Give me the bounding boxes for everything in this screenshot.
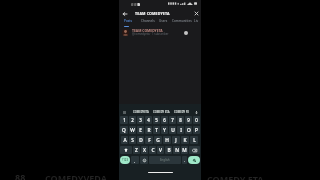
staticText: W [130,127,135,134]
staticText: L [193,137,196,144]
button[interactable]: N [173,146,180,154]
button[interactable]: G [154,136,162,144]
staticText: B [167,147,171,154]
button[interactable]: 9 [185,116,192,124]
staticText: Communities [172,19,192,23]
button[interactable]: TEAM COMEDYETA [119,27,201,38]
button[interactable]: More options [183,30,189,36]
staticText: 9 [187,117,190,123]
button[interactable]: COMEDYETA [130,109,151,115]
staticText: 1 [123,117,126,123]
staticText: K [183,137,187,144]
button[interactable]: Search [188,156,200,164]
staticText: T [155,127,158,134]
button[interactable]: Voice input [191,109,201,115]
staticText: D [139,137,143,144]
staticText: Z [135,147,138,154]
button[interactable]: H [163,136,171,144]
button[interactable]: S [129,136,136,144]
staticText: 88 [15,171,26,180]
staticText: P [195,127,198,134]
button[interactable]: M [181,146,188,154]
staticText: COMEDYETA [133,110,149,114]
button[interactable]: Back [121,10,128,17]
button[interactable]: W [129,126,136,134]
button[interactable]: O [185,126,192,134]
button[interactable]: Channels [141,19,155,23]
button[interactable]: X [141,146,148,154]
button[interactable]: 2 [129,116,136,124]
staticText: Channels [141,19,155,23]
button[interactable]: A [121,136,128,144]
staticText: U [171,127,175,134]
button[interactable]: , [131,156,139,164]
staticText: R [147,127,151,134]
staticText: Liv [194,19,199,23]
button[interactable]: K [181,136,189,144]
staticText: 8 [179,117,182,123]
button[interactable] [140,156,148,164]
button[interactable]: C [149,146,156,154]
button[interactable]: J [172,136,180,144]
staticText: 7 [171,117,174,123]
button[interactable]: 8 [177,116,184,124]
staticText: A [123,137,127,144]
button[interactable]: U [169,126,176,134]
staticText: ?123 [122,158,129,162]
staticText: F [148,137,151,144]
staticText: COMEDY FX [174,110,189,114]
button[interactable]: More options [119,109,130,115]
button[interactable]: COMEDY ETA [151,109,171,115]
staticText: C [151,147,155,154]
button[interactable]: P [193,126,200,134]
button[interactable]: Liv [194,19,199,23]
staticText: Y [163,127,166,134]
staticText: 4 [147,117,150,123]
staticText: COMEDY ETA [207,173,264,180]
button[interactable]: ?123 [120,156,130,164]
button[interactable]: B [165,146,172,154]
staticText: Posts [124,19,132,23]
button[interactable]: E [137,126,144,134]
staticText: . [184,158,186,163]
staticText: O [187,127,191,134]
button[interactable]: 0 [193,116,200,124]
button[interactable]: Clear search [193,10,200,17]
button[interactable]: Shift [120,146,132,154]
staticText: N [175,147,179,154]
staticText: 6 [163,117,166,123]
button[interactable]: Communities [172,19,192,23]
staticText: H [165,137,169,144]
button[interactable]: T [153,126,160,134]
button[interactable]: R [145,126,152,134]
staticText: , [134,158,136,163]
button[interactable]: 6 [161,116,168,124]
button[interactable]: 4 [145,116,152,124]
button[interactable]: 3 [137,116,144,124]
staticText: @comedyeta · 1 subscriber [132,32,169,36]
button[interactable]: L [190,136,198,144]
staticText: S [131,137,134,144]
button[interactable]: Backspace [189,146,200,154]
button[interactable]: . [182,156,187,164]
button[interactable]: D [137,136,144,144]
staticText: COMEDYVEDA [45,172,107,180]
button[interactable]: Posts [124,19,132,23]
button[interactable]: COMEDY FX [171,109,191,115]
staticText: 5 [155,117,158,123]
staticText: Users [159,19,168,23]
staticText: 0 [195,117,198,123]
button[interactable]: 1 [120,116,128,124]
button[interactable]: 7 [169,116,176,124]
staticText: X [143,147,146,154]
staticText: V [159,147,162,154]
button[interactable]: Users [159,19,168,23]
button[interactable]: Q [120,126,128,134]
button[interactable]: 5 [153,116,160,124]
button[interactable]: I [177,126,184,134]
button[interactable]: F [145,136,153,144]
button[interactable]: Space [149,156,181,164]
button[interactable]: Y [161,126,168,134]
button[interactable]: Z [133,146,140,154]
button[interactable]: V [157,146,164,154]
